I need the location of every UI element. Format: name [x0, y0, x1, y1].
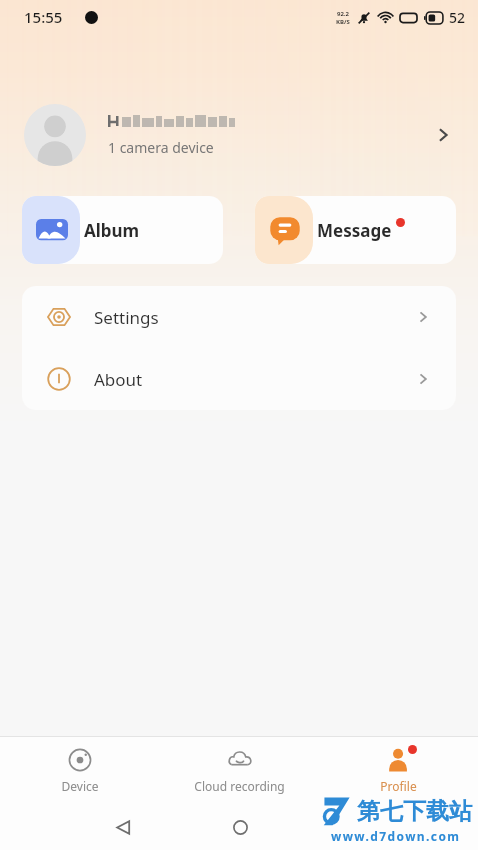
button[interactable]: Home: [225, 812, 255, 842]
staticText: 第七下载站: [357, 797, 472, 826]
other: Profile: [387, 748, 411, 772]
staticText: Cloud recording: [194, 778, 285, 794]
staticText: 15:55: [24, 7, 63, 27]
staticText: KB/S: [336, 18, 350, 26]
button[interactable]: Message: [255, 196, 456, 264]
other: Cloud recording: [227, 747, 253, 773]
other: Device: [68, 748, 92, 772]
button[interactable]: Settings: [22, 286, 456, 348]
staticText: www.d7down.com: [331, 828, 461, 844]
button[interactable]: About: [22, 348, 456, 410]
staticText: 92.2: [337, 10, 349, 18]
button[interactable]: Album: [22, 196, 223, 264]
button[interactable]: Back: [108, 812, 138, 842]
button[interactable]: Profile: [319, 737, 478, 804]
staticText: Album: [84, 219, 140, 242]
button[interactable]: Cloud recording: [160, 737, 319, 804]
staticText: Message: [317, 219, 392, 242]
staticText: Device: [61, 778, 99, 794]
staticText: Settings: [94, 306, 414, 329]
button[interactable]: 1 camera device: [0, 96, 478, 174]
staticText: Profile: [380, 778, 417, 794]
staticText: 52: [449, 8, 466, 27]
staticText: About: [94, 368, 414, 391]
button[interactable]: Device: [0, 737, 160, 804]
staticText: 1 camera device: [108, 138, 214, 157]
